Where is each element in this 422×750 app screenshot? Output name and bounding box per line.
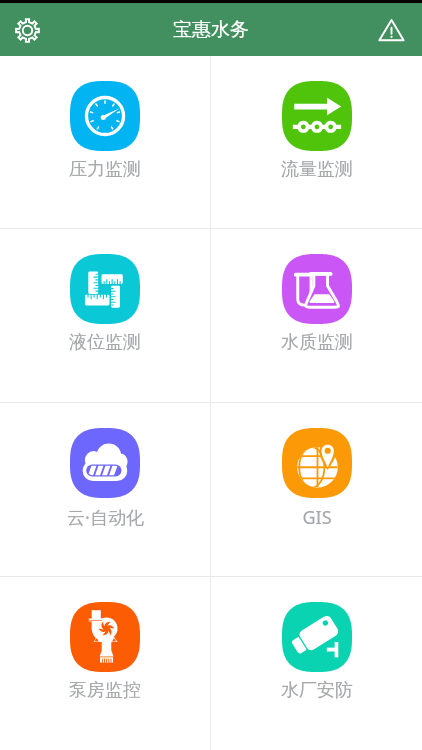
- staticText: 水质监测: [281, 331, 353, 354]
- staticText: 水厂安防: [281, 679, 353, 702]
- button[interactable]: 流量监测: [211, 56, 422, 228]
- button[interactable]: 水质监测: [211, 229, 422, 402]
- button[interactable]: 压力监测: [0, 56, 210, 228]
- staticText: 压力监测: [69, 158, 141, 181]
- staticText: 泵房监控: [69, 679, 141, 702]
- staticText: 宝惠水务: [173, 18, 249, 42]
- button[interactable]: Settings: [4, 7, 50, 53]
- staticText: 液位监测: [69, 331, 141, 354]
- button[interactable]: Alarm warnings: [368, 7, 414, 53]
- staticText: GIS: [302, 505, 332, 530]
- button[interactable]: GIS: [211, 403, 422, 576]
- staticText: 云·自动化: [67, 505, 144, 530]
- button[interactable]: 液位监测: [0, 229, 210, 402]
- button[interactable]: 泵房监控: [0, 577, 210, 750]
- button[interactable]: 云·自动化: [0, 403, 210, 576]
- staticText: 流量监测: [281, 158, 353, 181]
- button[interactable]: 水厂安防: [211, 577, 422, 750]
